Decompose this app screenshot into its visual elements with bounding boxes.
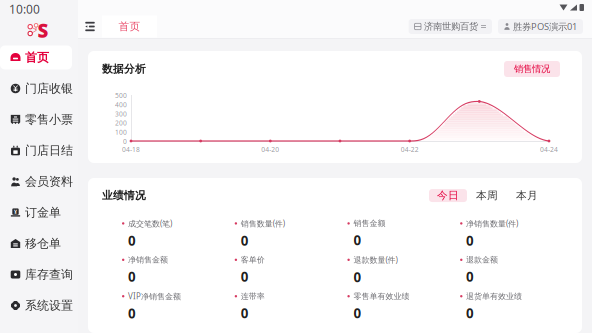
staticText: 0 xyxy=(128,305,136,322)
staticText: 退款数量(件) xyxy=(353,254,397,265)
staticText: 会员资料 xyxy=(25,174,73,189)
button[interactable]: 本月 xyxy=(507,189,547,202)
staticText: 成交笔数(笔) xyxy=(128,218,172,229)
staticText: 10:00 xyxy=(9,1,40,17)
staticText: 首页 xyxy=(25,50,49,65)
staticText: 0 xyxy=(241,232,249,249)
staticText: 0 xyxy=(466,232,474,249)
button[interactable]: 系统设置 xyxy=(0,290,78,321)
staticText: 移仓单 xyxy=(25,236,61,251)
button[interactable]: 门店收银 xyxy=(0,73,78,104)
staticText: 济南世购百货 xyxy=(424,21,478,32)
staticText: 04-24 xyxy=(540,145,558,154)
staticText: 本周 xyxy=(476,189,498,202)
button[interactable]: 本周 xyxy=(467,189,507,202)
staticText: 业绩情况 xyxy=(102,189,146,202)
button[interactable]: 首页 xyxy=(0,42,78,73)
staticText: 0 xyxy=(128,232,136,249)
staticText: 退款金额 xyxy=(466,255,498,265)
button[interactable]: ¥ xyxy=(0,197,78,228)
staticText: 04-22 xyxy=(401,145,419,154)
staticText: 0 xyxy=(123,137,127,146)
staticText: 零售单有效业绩 xyxy=(353,291,409,301)
staticText: 销售情况 xyxy=(514,63,550,75)
staticText: VIP净销售金额 xyxy=(128,291,181,302)
button[interactable]: 折叠菜单 xyxy=(78,14,102,38)
staticText: ¥ xyxy=(14,208,17,215)
staticText: 数据分析 xyxy=(102,62,146,75)
staticText: 零售小票 xyxy=(25,112,73,127)
staticText: 销售金额 xyxy=(353,218,385,228)
staticText: 订金单 xyxy=(25,205,61,220)
staticText: 销售数量(件) xyxy=(241,218,285,229)
button[interactable]: 移仓单 xyxy=(0,228,78,259)
button[interactable]: 首页 xyxy=(102,15,157,37)
staticText: 净销售数量(件) xyxy=(466,218,518,229)
staticText: 500 xyxy=(115,91,127,100)
button[interactable]: 零售小票 xyxy=(0,104,78,135)
staticText: 200 xyxy=(115,119,127,127)
staticText: 库存查询 xyxy=(25,267,73,282)
staticText: 0 xyxy=(353,304,361,322)
staticText: 系统设置 xyxy=(25,298,73,313)
staticText: S xyxy=(37,18,48,43)
staticText: 首页 xyxy=(118,20,140,33)
staticText: 门店日结 xyxy=(25,143,73,158)
staticText: 0 xyxy=(466,268,474,285)
staticText: 0 xyxy=(466,304,474,322)
staticText: 04-20 xyxy=(261,145,279,154)
staticText: 本月 xyxy=(516,189,538,202)
staticText: 0 xyxy=(353,231,361,249)
staticText: 100 xyxy=(115,128,127,137)
staticText: 0 xyxy=(353,268,361,286)
staticText: 连带率 xyxy=(241,291,265,301)
staticText: 今日 xyxy=(437,189,459,202)
staticText: 400 xyxy=(115,100,127,109)
button[interactable]: 济南世购百货 xyxy=(409,19,492,34)
staticText: 胜券POS演示01 xyxy=(513,20,577,33)
button[interactable]: 库存查询 xyxy=(0,259,78,290)
button[interactable]: 销售情况 xyxy=(504,61,560,77)
staticText: 0 xyxy=(128,268,136,285)
staticText: 0 xyxy=(241,304,249,322)
staticText: 退货单有效业绩 xyxy=(466,291,522,301)
button[interactable]: 门店日结 xyxy=(0,135,78,166)
staticText: 客单价 xyxy=(241,255,265,265)
staticText: 门店收银 xyxy=(25,81,73,96)
staticText: 04-18 xyxy=(122,145,140,154)
button[interactable]: 胜券POS演示01 xyxy=(498,19,583,34)
staticText: 净销售金额 xyxy=(128,255,168,265)
button[interactable]: 会员资料 xyxy=(0,166,78,197)
staticText: 300 xyxy=(115,109,127,118)
staticText: 0 xyxy=(241,268,249,285)
button[interactable]: 今日 xyxy=(429,189,467,202)
